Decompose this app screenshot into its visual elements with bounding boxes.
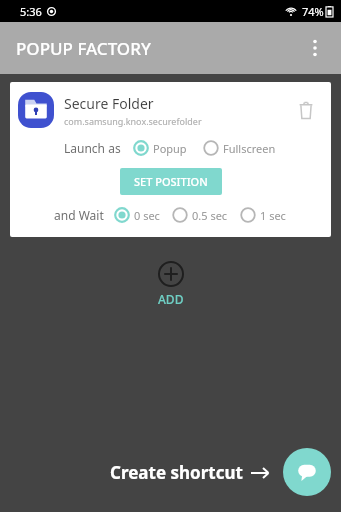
staticText: 0.5 sec bbox=[192, 208, 228, 223]
staticText: ADD bbox=[158, 291, 184, 307]
button[interactable]: More options bbox=[295, 28, 335, 68]
staticText: 74% bbox=[302, 4, 324, 19]
button[interactable]: 0 sec bbox=[112, 205, 162, 225]
button[interactable]: SET POSITION bbox=[120, 168, 222, 195]
staticText: 1 sec bbox=[260, 208, 286, 223]
staticText: POPUP FACTORY bbox=[16, 37, 151, 60]
staticText: com.samsung.knox.securefolder bbox=[64, 115, 202, 127]
button[interactable]: Secure Folder bbox=[10, 82, 331, 237]
staticText: Fullscreen bbox=[223, 141, 276, 156]
staticText: Create shortcut bbox=[110, 461, 243, 484]
button[interactable]: Feedback bbox=[283, 448, 331, 496]
button[interactable]: Delete bbox=[289, 93, 323, 127]
staticText: Popup bbox=[153, 141, 187, 156]
button[interactable]: Fullscreen bbox=[201, 138, 278, 158]
staticText: 0 sec bbox=[134, 208, 160, 223]
staticText: Launch as bbox=[64, 140, 121, 156]
staticText: and Wait bbox=[54, 207, 104, 223]
staticText: 5:36 bbox=[20, 4, 42, 19]
staticText: SET POSITION bbox=[134, 174, 208, 189]
button[interactable]: Popup bbox=[131, 138, 189, 158]
button[interactable]: 0.5 sec bbox=[170, 205, 230, 225]
button[interactable]: ADD bbox=[142, 257, 200, 311]
button[interactable]: Create shortcut bbox=[104, 457, 275, 488]
staticText: Secure Folder bbox=[64, 94, 154, 113]
button[interactable]: 1 sec bbox=[238, 205, 288, 225]
